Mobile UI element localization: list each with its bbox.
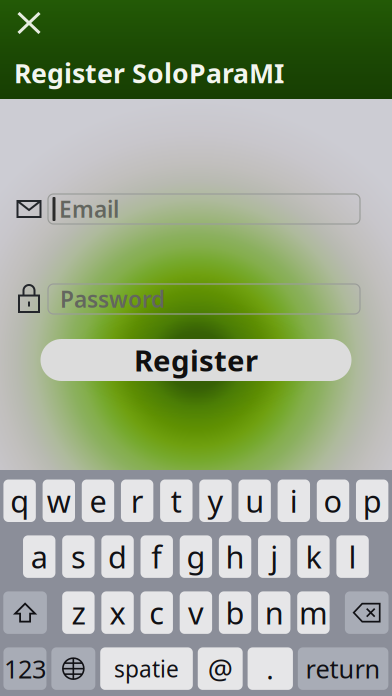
staticText: z xyxy=(71,592,85,633)
button[interactable]: 123 xyxy=(3,647,46,690)
button[interactable]: l xyxy=(336,535,369,578)
button[interactable]: n xyxy=(258,591,290,634)
staticText: s xyxy=(71,536,86,577)
staticText: m xyxy=(299,592,328,633)
button[interactable]: q xyxy=(3,479,36,522)
button[interactable]: b xyxy=(219,591,251,634)
button[interactable]: Register xyxy=(40,339,351,381)
button[interactable]: v xyxy=(180,591,212,634)
staticText: i xyxy=(290,480,298,521)
button[interactable]: u xyxy=(238,479,271,522)
button[interactable]: Next keyboard xyxy=(51,647,95,690)
staticText: k xyxy=(305,536,321,577)
staticText: spatie xyxy=(114,654,179,684)
staticText: Register xyxy=(134,340,258,379)
button[interactable]: a xyxy=(23,535,55,578)
staticText: . xyxy=(266,650,274,687)
staticText: n xyxy=(265,592,284,633)
staticText: t xyxy=(171,480,182,521)
button[interactable]: Shift xyxy=(3,591,47,634)
button[interactable]: x xyxy=(101,591,134,634)
staticText: d xyxy=(108,536,127,577)
staticText: @ xyxy=(208,650,233,687)
staticText: u xyxy=(245,480,264,521)
button[interactable]: i xyxy=(278,479,310,522)
staticText: f xyxy=(151,536,162,577)
button[interactable]: spatie xyxy=(100,647,193,690)
staticText: l xyxy=(349,536,357,577)
button[interactable]: m xyxy=(297,591,330,634)
button[interactable]: @ xyxy=(198,647,243,690)
staticText: Register SoloParaMI xyxy=(14,55,284,91)
staticText: x xyxy=(110,592,126,633)
staticText: Password xyxy=(60,284,165,314)
staticText: v xyxy=(188,592,204,633)
staticText: Email xyxy=(59,194,119,224)
staticText: r xyxy=(131,480,144,521)
button[interactable]: o xyxy=(317,479,349,522)
staticText: g xyxy=(186,536,205,577)
button[interactable]: g xyxy=(180,535,212,578)
staticText: j xyxy=(270,536,278,577)
staticText: return xyxy=(306,652,381,685)
button[interactable]: e xyxy=(82,479,114,522)
staticText: q xyxy=(10,480,29,521)
staticText: o xyxy=(323,480,342,521)
button[interactable]: h xyxy=(219,535,251,578)
button[interactable]: f xyxy=(140,535,173,578)
staticText: c xyxy=(149,592,164,633)
button[interactable]: Close xyxy=(7,2,51,44)
button[interactable]: t xyxy=(160,479,192,522)
button[interactable]: r xyxy=(121,479,153,522)
button[interactable]: w xyxy=(43,479,75,522)
staticText: w xyxy=(47,480,71,521)
button[interactable]: y xyxy=(199,479,232,522)
staticText: e xyxy=(89,480,106,521)
button[interactable]: j xyxy=(258,535,290,578)
staticText: y xyxy=(207,480,223,521)
button[interactable]: return xyxy=(298,647,388,690)
button[interactable]: z xyxy=(62,591,95,634)
button[interactable]: c xyxy=(140,591,173,634)
button[interactable]: k xyxy=(297,535,330,578)
button[interactable]: Delete xyxy=(345,591,388,634)
staticText: p xyxy=(363,480,382,521)
button[interactable]: p xyxy=(356,479,388,522)
staticText: 123 xyxy=(4,652,46,685)
button[interactable]: s xyxy=(62,535,95,578)
button[interactable]: d xyxy=(101,535,134,578)
staticText: b xyxy=(226,592,245,633)
button[interactable]: . xyxy=(248,647,293,690)
staticText: h xyxy=(226,536,245,577)
staticText: a xyxy=(31,536,48,577)
